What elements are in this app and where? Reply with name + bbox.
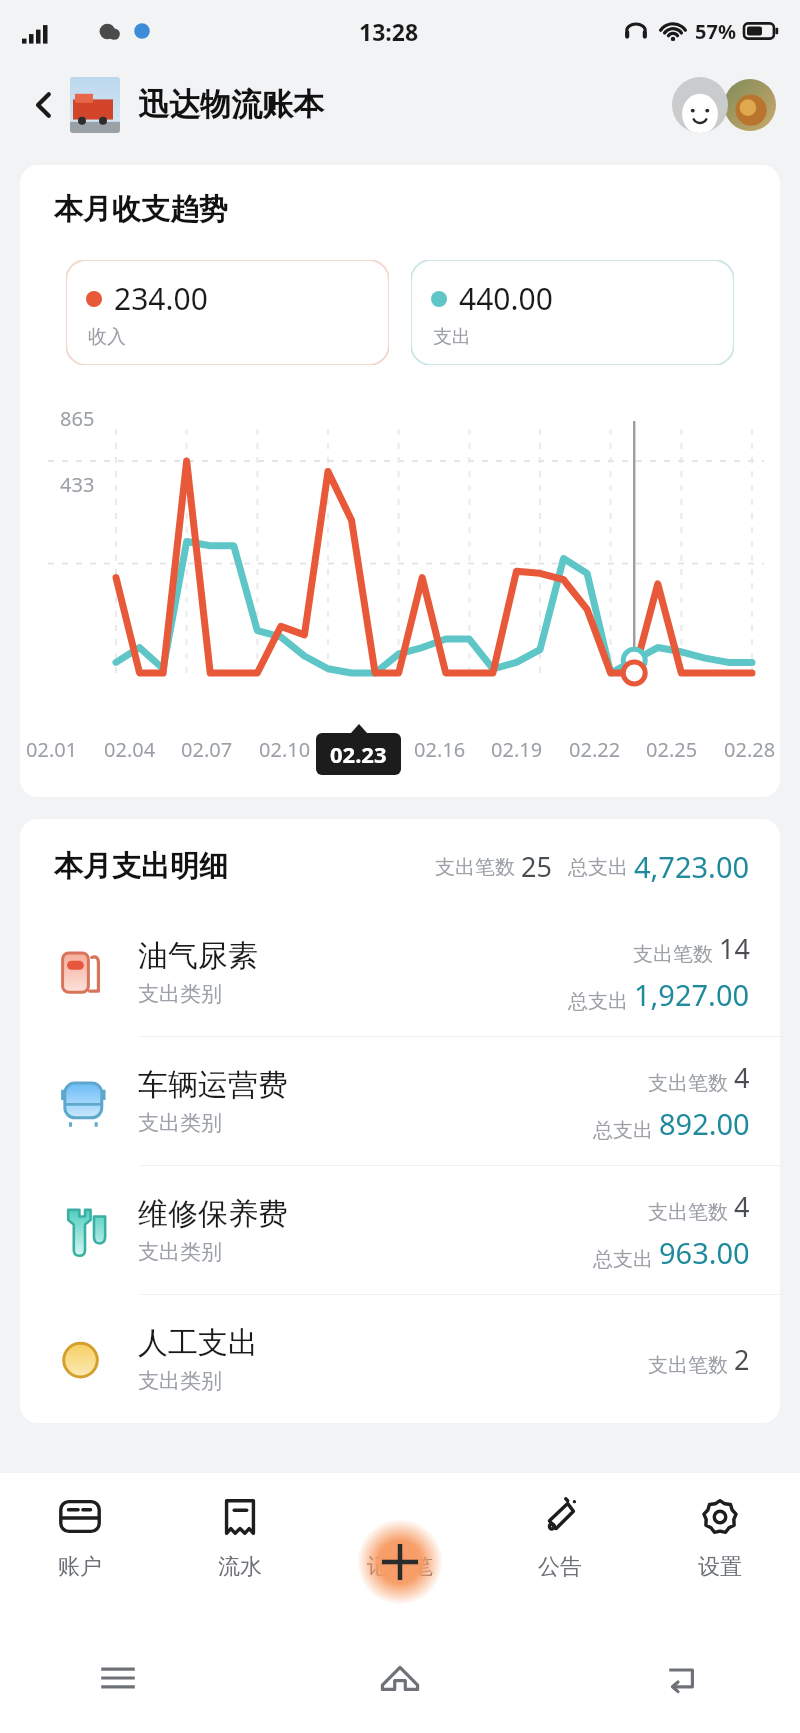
staticText: 57%	[695, 18, 736, 45]
button[interactable]: 人工支出	[20, 1295, 780, 1423]
button[interactable]: 公告	[480, 1473, 640, 1623]
staticText: 总支出	[568, 987, 634, 1014]
staticText: 记一笔	[367, 1553, 433, 1581]
staticText: 02.22	[569, 736, 621, 763]
staticText: 本月收支趋势	[54, 191, 228, 228]
staticText: 支出	[433, 325, 471, 349]
staticText: 02.25	[646, 736, 698, 763]
staticText: 支出类别	[138, 1239, 222, 1265]
button[interactable]: 主页	[372, 1650, 428, 1706]
staticText: 13:28	[359, 16, 419, 47]
staticText: 支出笔数	[633, 940, 719, 967]
button[interactable]: 最近任务	[90, 1650, 146, 1706]
staticText: 2	[734, 1341, 750, 1378]
staticText: 25	[521, 848, 552, 885]
staticText: 支出类别	[138, 981, 222, 1007]
staticText: 4,723.00	[634, 847, 750, 886]
staticText: 迅达物流账本	[138, 85, 324, 124]
button[interactable]: 记一笔	[357, 1519, 443, 1605]
button[interactable]: 维修保养费	[20, 1166, 780, 1294]
staticText: 02.07	[181, 736, 233, 763]
staticText: 02.04	[104, 736, 156, 763]
staticText: 4	[734, 1059, 750, 1096]
staticText: 892.00	[659, 1104, 750, 1143]
button[interactable]: 油气尿素	[20, 908, 780, 1036]
staticText: 02.19	[491, 736, 543, 763]
staticText: 支出笔数	[648, 1198, 734, 1225]
button[interactable]: 车辆运营费	[20, 1037, 780, 1165]
staticText: 234.00	[114, 278, 208, 319]
staticText: 02.16	[414, 736, 466, 763]
staticText: 440.00	[459, 278, 553, 319]
staticText: 14	[719, 930, 750, 967]
button[interactable]: 返回	[654, 1650, 710, 1706]
staticText: 账户	[58, 1553, 102, 1581]
staticText: 02.13	[336, 736, 388, 763]
staticText: 支出类别	[138, 1110, 222, 1136]
staticText: 1,927.00	[634, 975, 750, 1014]
staticText: 865	[60, 405, 95, 432]
staticText: 支出笔数	[648, 1351, 734, 1378]
staticText: 4	[734, 1188, 750, 1225]
button[interactable]: 234.00	[66, 260, 389, 365]
staticText: 02.01	[26, 736, 78, 763]
button[interactable]: 返回	[22, 83, 66, 127]
button[interactable]: 账户	[0, 1473, 160, 1623]
button[interactable]: 流水	[160, 1473, 320, 1623]
button[interactable]: 440.00	[411, 260, 734, 365]
staticText: 433	[60, 471, 95, 498]
staticText: 总支出	[593, 1245, 659, 1272]
staticText: 收入	[88, 325, 126, 349]
staticText: 支出类别	[138, 1368, 222, 1394]
staticText: 总支出	[568, 853, 634, 880]
button[interactable]: 我的头像	[672, 77, 728, 133]
button[interactable]: 设置	[640, 1473, 800, 1623]
staticText: 02.23	[330, 739, 387, 769]
staticText: 支出笔数	[435, 853, 521, 880]
staticText: 人工支出	[138, 1324, 258, 1362]
staticText: 963.00	[659, 1233, 750, 1272]
staticText: 02.28	[724, 736, 776, 763]
staticText: 流水	[218, 1553, 262, 1581]
staticText: 支出笔数	[648, 1069, 734, 1096]
button[interactable]: 成员头像	[724, 79, 776, 131]
staticText: 公告	[538, 1553, 582, 1581]
staticText: 维修保养费	[138, 1195, 288, 1233]
staticText: 总支出	[593, 1116, 659, 1143]
staticText: 车辆运营费	[138, 1066, 288, 1104]
staticText: 本月支出明细	[54, 848, 228, 885]
staticText: 油气尿素	[138, 937, 258, 975]
button[interactable]: 记一笔	[320, 1473, 480, 1623]
staticText: 02.10	[259, 736, 311, 763]
staticText: 设置	[698, 1553, 742, 1581]
